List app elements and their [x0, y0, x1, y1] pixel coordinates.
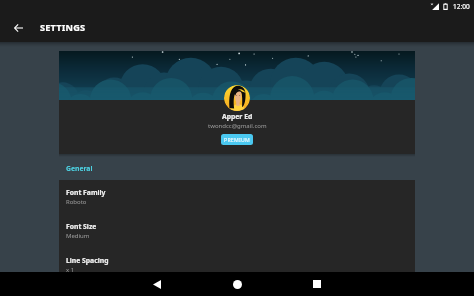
- staticText: PREMIUM: [224, 136, 250, 143]
- button[interactable]: Line Spacing: [59, 248, 415, 282]
- button[interactable]: Back: [133, 272, 181, 296]
- button[interactable]: Home: [213, 272, 261, 296]
- button[interactable]: Font Family: [59, 180, 415, 214]
- staticText: Apper Ed: [222, 112, 253, 121]
- button[interactable]: Recent apps: [293, 272, 341, 296]
- button[interactable]: Font Size: [59, 214, 415, 248]
- staticText: Roboto: [66, 198, 87, 206]
- staticText: Font Size: [66, 222, 97, 231]
- staticText: twondcc@gmail.com: [208, 122, 267, 130]
- staticText: 12:00: [453, 2, 470, 11]
- staticText: Medium: [66, 232, 90, 240]
- staticText: SETTINGS: [40, 21, 86, 34]
- staticText: Font Family: [66, 188, 106, 197]
- button[interactable]: PREMIUM: [221, 134, 253, 145]
- staticText: General: [66, 164, 93, 173]
- staticText: Line Spacing: [66, 256, 109, 265]
- button[interactable]: Back: [0, 13, 36, 42]
- staticText: x 1: [66, 266, 75, 274]
